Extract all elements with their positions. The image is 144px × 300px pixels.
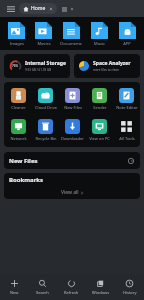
staticText: Home	[31, 5, 46, 12]
button[interactable]: Movies	[30, 20, 57, 48]
staticText: Windows	[92, 290, 110, 295]
staticText: 9.93 GB / 61.39 GB	[25, 68, 52, 72]
staticText: Search	[36, 290, 49, 295]
staticText: Network	[10, 136, 27, 141]
staticText: Refresh	[64, 290, 79, 295]
button[interactable]: More options	[68, 5, 76, 13]
button[interactable]: Documents	[57, 20, 85, 48]
button[interactable]: Windows	[86, 274, 115, 300]
button[interactable]: All Tools	[113, 117, 140, 143]
button[interactable]: Space Analyzer	[74, 54, 140, 78]
staticText: Note Editor	[116, 105, 138, 110]
button[interactable]: New	[0, 274, 28, 300]
button[interactable]: Images	[3, 20, 30, 48]
staticText: New Files	[9, 157, 38, 165]
button[interactable]: Refresh	[57, 274, 86, 300]
staticText: more files to clean	[93, 68, 119, 72]
button[interactable]: View on PC	[86, 117, 113, 143]
staticText: APP	[123, 41, 131, 46]
staticText: Sender	[93, 105, 107, 110]
staticText: View on PC	[89, 136, 110, 141]
button[interactable]: History	[115, 274, 144, 300]
staticText: Images	[10, 41, 24, 46]
button[interactable]: Music	[85, 20, 113, 48]
button[interactable]: New tab	[60, 5, 68, 13]
staticText: Cloud Drive	[35, 105, 57, 110]
button[interactable]: Sender	[86, 86, 113, 112]
button[interactable]: Menu	[5, 3, 16, 14]
staticText: Recycle Bin	[35, 136, 57, 141]
button[interactable]: 76%	[4, 54, 70, 78]
button[interactable]: Note Editor	[113, 86, 140, 112]
staticText: Bookmarks	[9, 176, 44, 184]
button[interactable]: New Files	[4, 152, 140, 169]
staticText: Downloader	[61, 136, 84, 141]
staticText: New Files	[64, 105, 82, 110]
button[interactable]: Home	[19, 3, 57, 14]
staticText: Movies	[37, 41, 51, 46]
button[interactable]: Cloud Drive	[32, 86, 59, 112]
button[interactable]: Recycle Bin	[32, 117, 59, 143]
staticText: View all	[61, 189, 79, 196]
button[interactable]: Search	[28, 274, 57, 300]
staticText: All Tools	[119, 136, 135, 141]
button[interactable]: New Files	[59, 86, 86, 112]
staticText: History	[123, 290, 137, 295]
button[interactable]: Downloader	[59, 117, 86, 143]
staticText: Cleaner	[11, 105, 26, 110]
staticText: Music	[94, 41, 105, 46]
button[interactable]: Cleaner	[4, 86, 32, 112]
button[interactable]: Sort new files	[127, 157, 135, 165]
staticText: New	[10, 290, 19, 295]
staticText: Documents	[60, 41, 82, 46]
button[interactable]: Bookmarks	[4, 173, 140, 199]
button[interactable]: APP	[113, 20, 141, 48]
staticText: 76%	[12, 64, 18, 68]
staticText: Space Analyzer	[93, 60, 131, 67]
button[interactable]: Network	[4, 117, 32, 143]
staticText: Internal Storage	[25, 60, 66, 67]
